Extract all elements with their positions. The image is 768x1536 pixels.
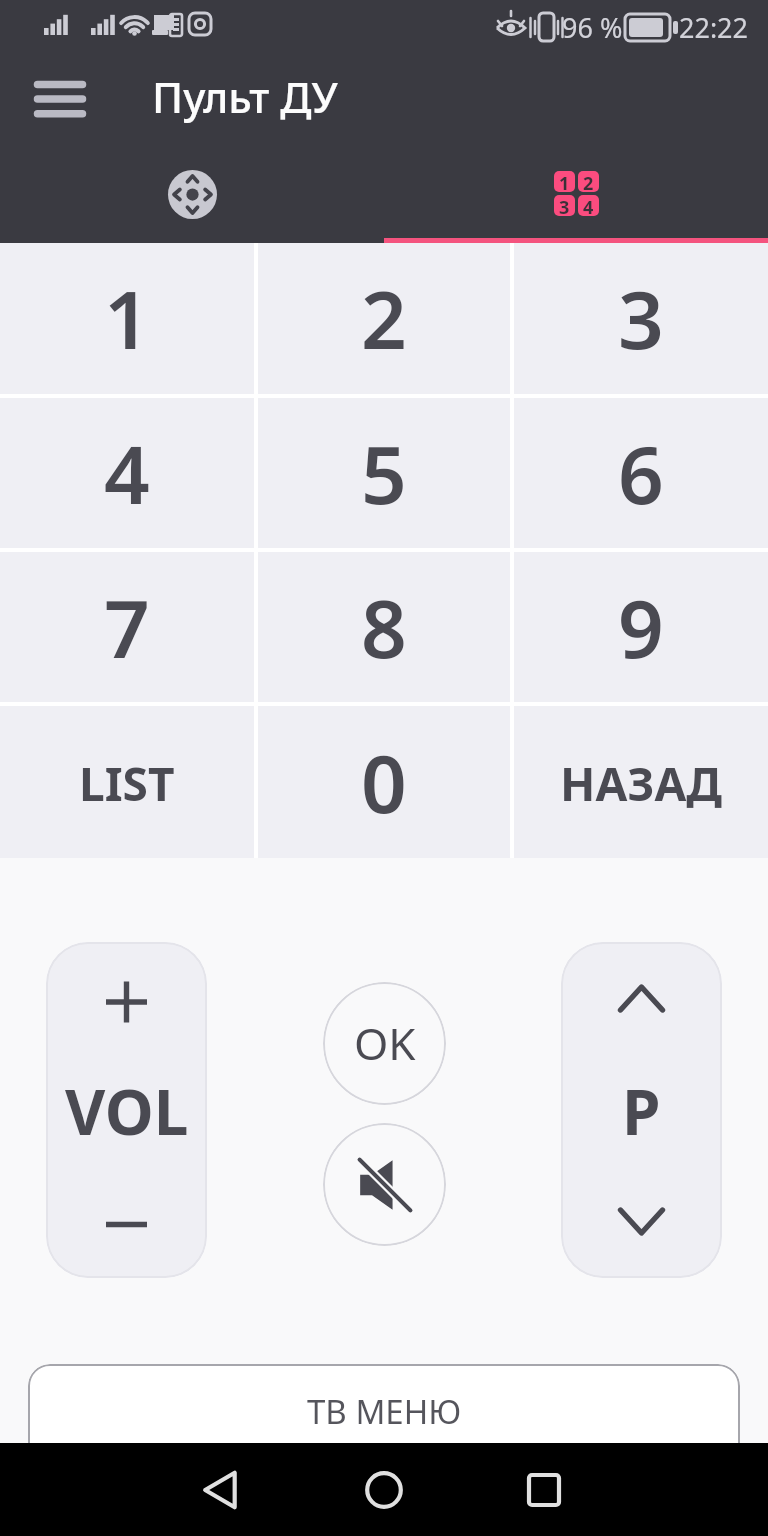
staticText: 0 — [361, 727, 407, 836]
staticText: 2 — [361, 263, 407, 372]
staticText: 6 — [618, 418, 664, 527]
staticText: 1 — [559, 171, 570, 192]
staticText: 3 — [559, 195, 570, 216]
staticText: ТВ МЕНЮ — [307, 1389, 462, 1434]
staticText: 3 — [618, 263, 664, 372]
button[interactable]: Number keypad tab — [384, 144, 768, 243]
button[interactable]: Back — [184, 1453, 258, 1527]
button[interactable]: OK — [323, 982, 446, 1105]
button[interactable]: 5 — [258, 398, 510, 548]
staticText: НАЗАД — [560, 752, 723, 815]
staticText: 8 — [361, 572, 407, 681]
staticText: 5 — [361, 418, 407, 527]
button[interactable]: НАЗАД — [514, 706, 768, 858]
staticText: 22:22 — [679, 9, 749, 46]
button[interactable]: 7 — [0, 552, 254, 702]
button[interactable]: ТВ МЕНЮ — [28, 1364, 740, 1474]
staticText: 2 — [583, 171, 594, 192]
staticText: 7 — [104, 572, 150, 681]
button[interactable]: Volume — [46, 942, 207, 1278]
button[interactable]: 0 — [258, 706, 510, 858]
button[interactable]: Open navigation menu — [15, 53, 105, 141]
button[interactable]: 6 — [514, 398, 768, 548]
button[interactable]: Program — [561, 942, 722, 1278]
staticText: 96 % — [562, 9, 623, 46]
button[interactable]: Direction pad tab — [0, 144, 384, 243]
button[interactable]: 3 — [514, 243, 768, 394]
staticText: LIST — [79, 752, 175, 815]
button[interactable]: 9 — [514, 552, 768, 702]
staticText: OK — [354, 1013, 416, 1073]
staticText: 4 — [583, 195, 594, 216]
staticText: P — [622, 1069, 661, 1153]
staticText: 1 — [104, 263, 150, 372]
button[interactable]: 1 — [0, 243, 254, 394]
button[interactable]: 8 — [258, 552, 510, 702]
staticText: 9 — [618, 572, 664, 681]
staticText: Пульт ДУ — [152, 68, 338, 125]
button[interactable]: Home — [347, 1453, 421, 1527]
staticText: VOL — [65, 1069, 189, 1153]
button[interactable]: LIST — [0, 706, 254, 858]
button[interactable]: 4 — [0, 398, 254, 548]
staticText: 4 — [104, 418, 150, 527]
button[interactable]: Recent apps — [507, 1453, 581, 1527]
button[interactable]: Mute — [323, 1123, 446, 1246]
button[interactable]: 2 — [258, 243, 510, 394]
